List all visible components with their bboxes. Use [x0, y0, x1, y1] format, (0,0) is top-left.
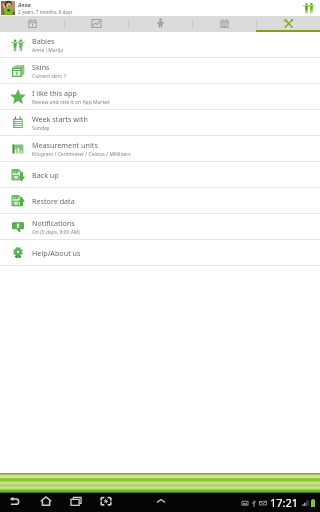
staticText: Anna [18, 1, 31, 8]
button[interactable]: Settings [257, 16, 320, 30]
staticText: Help/About us [32, 248, 81, 258]
staticText: I like this app [32, 88, 77, 98]
button[interactable]: Calendar [0, 16, 64, 30]
button[interactable]: Screenshot [98, 493, 113, 508]
staticText: Week starts with [32, 114, 88, 124]
button[interactable]: Diary [193, 16, 256, 30]
button[interactable]: Show status bar [153, 493, 168, 508]
staticText: Notifications [32, 218, 75, 228]
staticText: Babies [32, 36, 55, 46]
button[interactable]: App logo [303, 2, 315, 14]
staticText: 2 years, 7 months, 6 days [18, 9, 73, 15]
button[interactable]: Notifications [0, 214, 320, 239]
button[interactable]: Week starts with [0, 110, 320, 135]
staticText: 17:21 [270, 495, 299, 510]
staticText: Skins [32, 62, 50, 72]
button[interactable]: Babies [0, 32, 320, 57]
staticText: Sunday [32, 125, 50, 132]
button[interactable]: Measurement units [0, 136, 320, 161]
staticText: Restore data [32, 196, 75, 206]
button[interactable]: Charts [65, 16, 128, 30]
staticText: Measurement units [32, 140, 98, 150]
staticText: Current skin: 1 [32, 73, 67, 80]
staticText: Anna |Marija [32, 47, 64, 54]
button[interactable]: Home [38, 493, 53, 508]
button[interactable]: Baby photo [1, 1, 15, 15]
button[interactable]: Baby [129, 16, 192, 30]
button[interactable]: Back [7, 493, 22, 508]
staticText: On (0 days, 9:00 AM) [32, 229, 80, 236]
staticText: Review and rate it on App Market [32, 99, 110, 106]
button[interactable]: Restore data [0, 188, 320, 213]
button[interactable]: Help/About us [0, 240, 320, 265]
button[interactable]: Recent apps [68, 493, 83, 508]
staticText: Back up [32, 170, 59, 180]
button[interactable]: Back up [0, 162, 320, 187]
staticText: Kilogram / Centimeter / Celsius / Millil… [32, 151, 131, 158]
button[interactable]: Skins [0, 58, 320, 83]
button[interactable]: I like this app [0, 84, 320, 109]
